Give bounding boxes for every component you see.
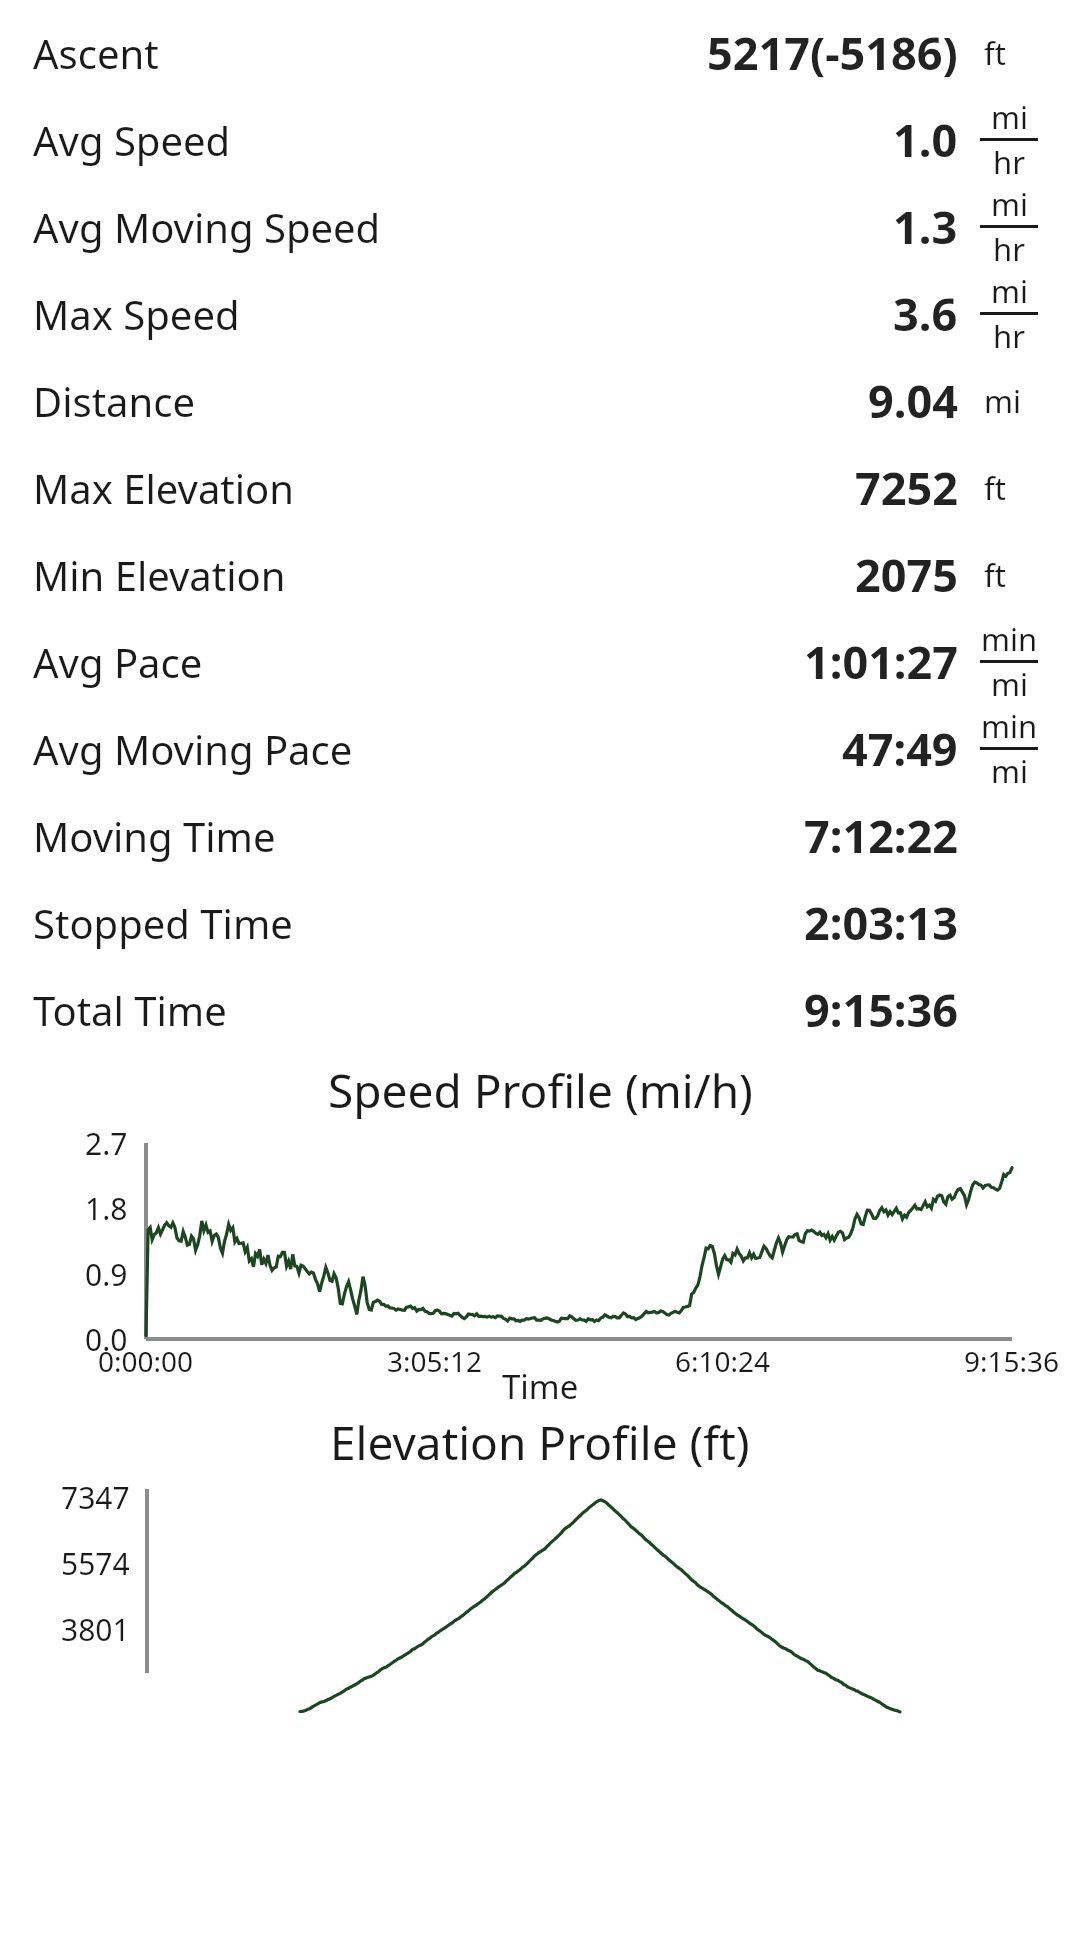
staticText: mi [991, 663, 1028, 705]
staticText: 3:05:12 [387, 1342, 483, 1380]
staticText: 7347 [61, 1477, 130, 1518]
staticText: ft [984, 554, 1006, 596]
staticText: 47:49 [842, 718, 958, 779]
staticText: 1.3 [893, 196, 958, 257]
staticText: min [981, 705, 1038, 747]
staticText: mi [991, 750, 1028, 792]
staticText: Avg Moving Speed [33, 200, 381, 254]
button[interactable]: Avg Moving Speed [0, 183, 1080, 270]
staticText: 3801 [61, 1609, 130, 1650]
staticText: Total Time [33, 983, 227, 1037]
staticText: 2:03:13 [804, 892, 958, 953]
staticText: ft [984, 467, 1006, 509]
staticText: Avg Speed [33, 113, 231, 167]
staticText: mi [991, 96, 1028, 138]
staticText: 9.04 [868, 370, 958, 431]
button[interactable]: Avg Pace [0, 618, 1080, 705]
button[interactable]: Distance [0, 357, 1080, 444]
staticText: Elevation Profile (ft) [330, 1411, 750, 1473]
staticText: Min Elevation [33, 548, 286, 602]
staticText: Max Speed [33, 287, 240, 341]
staticText: 9:15:36 [804, 979, 958, 1040]
staticText: 2.7 [85, 1123, 128, 1164]
button[interactable]: Stopped Time [0, 879, 1080, 966]
staticText: Ascent [33, 26, 159, 80]
button[interactable]: Min Elevation [0, 531, 1080, 618]
staticText: hr [993, 315, 1025, 357]
button[interactable]: Avg Moving Pace [0, 705, 1080, 792]
button[interactable]: Max Elevation [0, 444, 1080, 531]
staticText: Distance [33, 374, 196, 428]
staticText: 6:10:24 [675, 1342, 771, 1380]
staticText: Speed Profile (mi/h) [328, 1059, 753, 1121]
button[interactable]: Ascent [0, 9, 1080, 96]
button[interactable]: Avg Speed [0, 96, 1080, 183]
staticText: 7:12:22 [804, 805, 958, 866]
staticText: Stopped Time [33, 896, 293, 950]
staticText: 3.6 [893, 283, 958, 344]
staticText: Avg Moving Pace [33, 722, 353, 776]
staticText: 1:01:27 [804, 631, 958, 692]
staticText: Time [502, 1364, 579, 1409]
staticText: hr [993, 228, 1025, 270]
staticText: hr [993, 141, 1025, 183]
button[interactable]: Total Time [0, 966, 1080, 1053]
staticText: Avg Pace [33, 635, 203, 689]
staticText: Max Elevation [33, 461, 295, 515]
staticText: 5217(-5186) [707, 22, 958, 83]
staticText: 9:15:36 [964, 1342, 1060, 1380]
staticText: ft [984, 32, 1006, 74]
staticText: 1.0 [893, 109, 958, 170]
staticText: Moving Time [33, 809, 276, 863]
staticText: 0:00:00 [98, 1342, 194, 1380]
staticText: 5574 [61, 1543, 130, 1584]
staticText: mi [991, 183, 1028, 225]
button[interactable]: Max Speed [0, 270, 1080, 357]
staticText: min [981, 618, 1038, 660]
button[interactable]: Moving Time [0, 792, 1080, 879]
staticText: mi [984, 380, 1021, 422]
staticText: 2075 [855, 544, 958, 605]
staticText: 7252 [855, 457, 958, 518]
staticText: mi [991, 270, 1028, 312]
staticText: 1.8 [85, 1188, 128, 1229]
staticText: 0.0 [85, 1319, 128, 1360]
staticText: 0.9 [85, 1254, 128, 1295]
